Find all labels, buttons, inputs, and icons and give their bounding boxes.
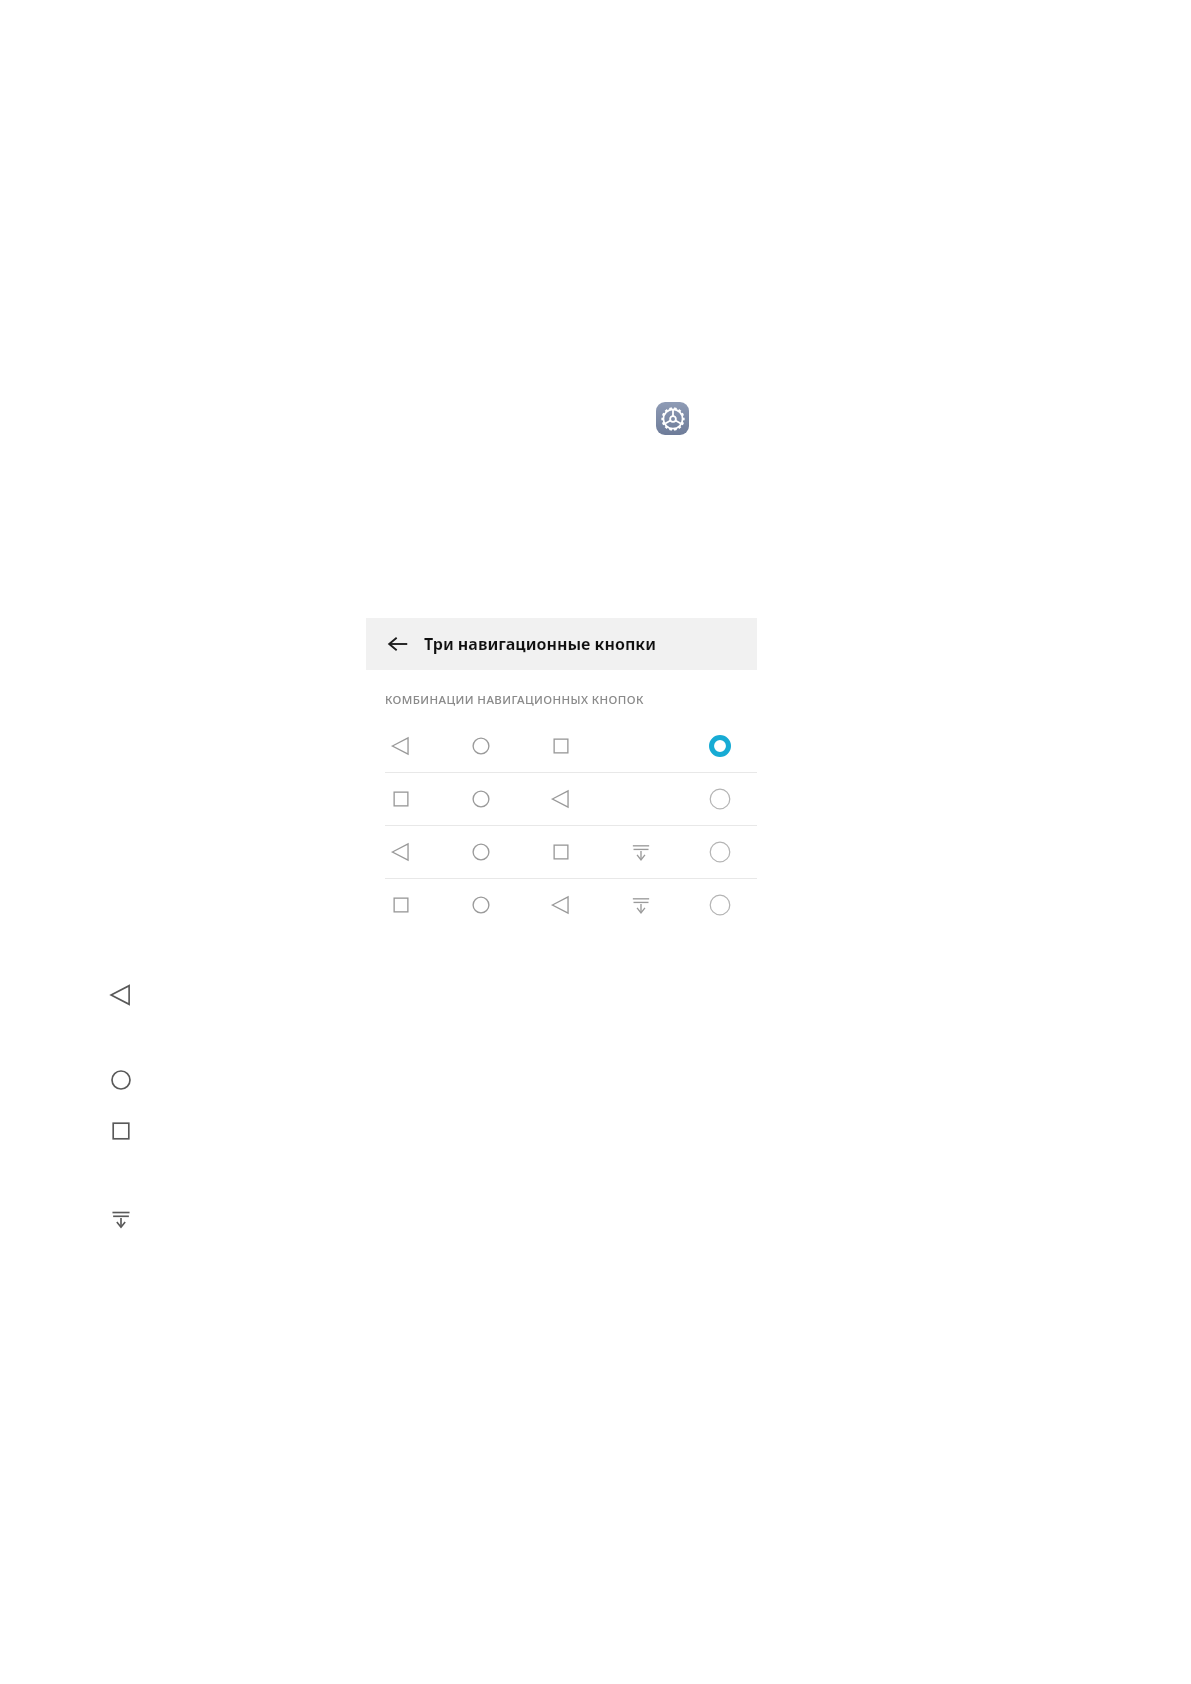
button[interactable]: Notification shade	[104, 1202, 138, 1236]
staticText: Три навигационные кнопки	[424, 633, 656, 655]
button[interactable]: Select combination	[366, 773, 757, 825]
button[interactable]: Select combination	[366, 720, 757, 772]
button[interactable]: Select combination	[703, 888, 737, 922]
button[interactable]: Back	[104, 978, 138, 1012]
button[interactable]: Select combination	[703, 782, 737, 816]
button[interactable]: Select combination	[366, 826, 757, 878]
button[interactable]: Settings	[656, 402, 689, 435]
button[interactable]: Back	[380, 626, 416, 662]
button[interactable]: Home	[104, 1063, 138, 1097]
button[interactable]: Select combination	[366, 879, 757, 931]
staticText: КОМБИНАЦИИ НАВИГАЦИОННЫХ КНОПОК	[385, 692, 644, 708]
button[interactable]: Select combination	[703, 835, 737, 869]
button[interactable]: Recents	[104, 1114, 138, 1148]
button[interactable]: Select combination	[703, 729, 737, 763]
